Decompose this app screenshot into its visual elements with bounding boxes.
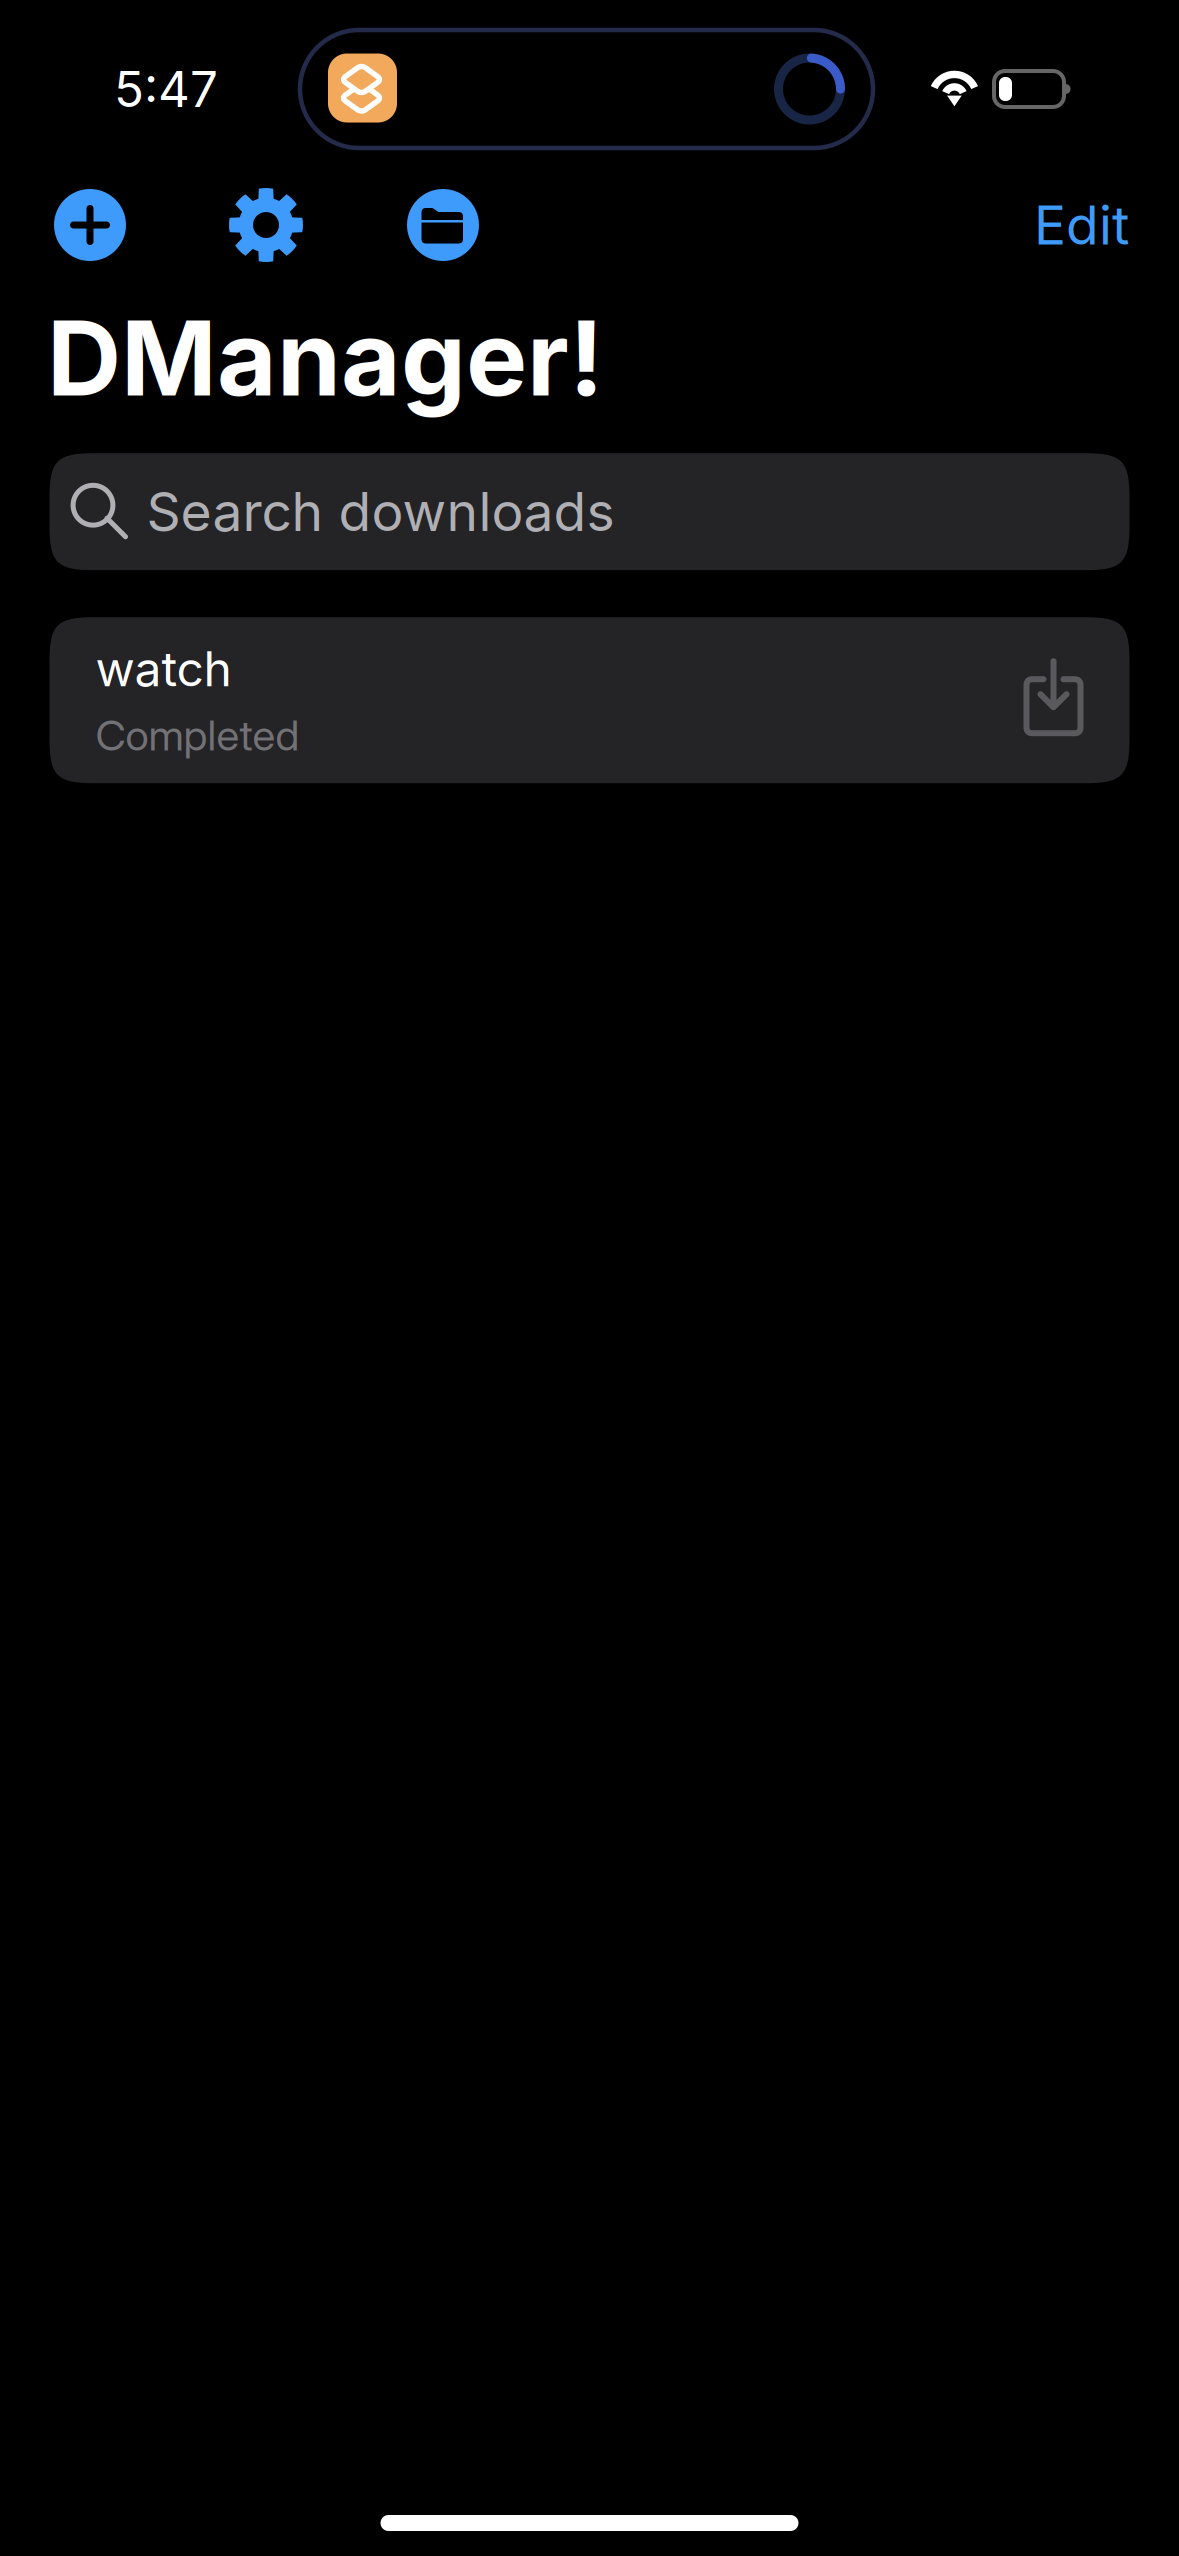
button[interactable]: Add download xyxy=(54,189,126,261)
staticText: Completed xyxy=(95,710,299,761)
button[interactable]: Search downloads xyxy=(49,453,1129,570)
button[interactable]: Browse files xyxy=(407,189,479,261)
button[interactable]: Settings xyxy=(229,188,303,262)
button[interactable]: watch xyxy=(49,617,1129,783)
staticText: watch xyxy=(95,640,231,698)
staticText: Edit xyxy=(1034,193,1129,257)
staticText: Search downloads xyxy=(146,479,614,544)
staticText: 5:47 xyxy=(114,59,218,119)
staticText: DManager! xyxy=(47,296,604,420)
button[interactable]: Edit xyxy=(1034,193,1129,257)
